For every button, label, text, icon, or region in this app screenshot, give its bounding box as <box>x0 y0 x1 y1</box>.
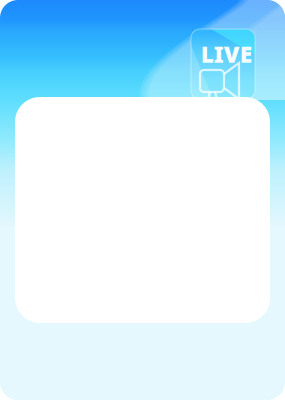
staticText: LIVE <box>201 39 252 69</box>
